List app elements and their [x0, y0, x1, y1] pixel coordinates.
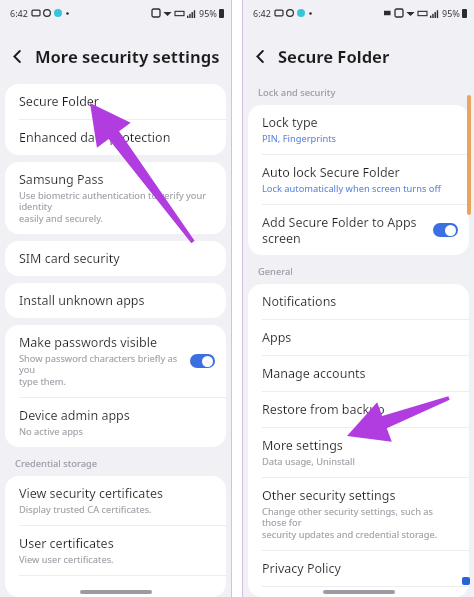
- button[interactable]: SIM card security: [5, 241, 226, 276]
- button[interactable]: User certificates: [5, 526, 226, 575]
- staticText: Credential storage: [15, 457, 98, 470]
- button[interactable]: Notifications: [248, 284, 469, 319]
- button[interactable]: Device admin apps: [5, 398, 226, 447]
- button[interactable]: Toggle on: [433, 223, 458, 237]
- staticText: Notifications: [262, 293, 337, 310]
- button[interactable]: More settings: [248, 428, 469, 477]
- staticText: Other security settings: [262, 487, 396, 504]
- staticText: Samsung Pass: [19, 171, 104, 188]
- staticText: User certificates: [19, 535, 114, 552]
- staticText: Install unknown apps: [19, 292, 145, 309]
- staticText: 95%: [442, 7, 460, 19]
- button[interactable]: Lock type: [248, 105, 469, 154]
- staticText: Show password characters briefly as you …: [19, 352, 184, 388]
- button[interactable]: Samsung Pass: [5, 162, 226, 234]
- button[interactable]: Back: [0, 39, 34, 73]
- staticText: Lock and security: [258, 86, 336, 99]
- button[interactable]: Other security settings: [248, 478, 469, 550]
- staticText: Lock type: [262, 114, 318, 131]
- staticText: More settings: [262, 437, 343, 454]
- button[interactable]: Add Secure Folder to Apps screen: [248, 205, 469, 255]
- staticText: Privacy Policy: [262, 560, 341, 577]
- staticText: Make passwords visible: [19, 334, 157, 351]
- button[interactable]: Toggle on: [190, 354, 215, 368]
- staticText: PIN, Fingerprints: [262, 132, 337, 145]
- staticText: 6:42: [253, 7, 271, 19]
- staticText: SIM card security: [19, 250, 120, 267]
- staticText: Lock automatically when screen turns off: [262, 182, 441, 195]
- staticText: Secure Folder: [278, 45, 390, 67]
- staticText: 95%: [199, 7, 217, 19]
- staticText: No active apps: [19, 425, 84, 438]
- staticText: Auto lock Secure Folder: [262, 164, 400, 181]
- button[interactable]: Privacy Policy: [248, 551, 469, 586]
- staticText: General: [258, 265, 293, 278]
- button[interactable]: Manage accounts: [248, 356, 469, 391]
- button[interactable]: About Secure Folder: [248, 587, 469, 597]
- staticText: View security certificates: [19, 485, 163, 502]
- staticText: Device admin apps: [19, 407, 130, 424]
- staticText: Manage accounts: [262, 365, 366, 382]
- staticText: Display trusted CA certificates.: [19, 503, 152, 516]
- staticText: View user certificates.: [19, 553, 114, 566]
- staticText: Use biometric authentication to verify y…: [19, 189, 215, 225]
- button[interactable]: Auto lock Secure Folder: [248, 155, 469, 204]
- button[interactable]: Make passwords visible: [5, 325, 226, 397]
- staticText: More security settings: [35, 45, 220, 67]
- button[interactable]: Restore from backup: [248, 392, 469, 427]
- button[interactable]: View security certificates: [5, 476, 226, 525]
- staticText: 6:42: [10, 7, 28, 19]
- staticText: Secure Folder: [19, 93, 100, 110]
- staticText: Enhanced data protection: [19, 129, 171, 146]
- staticText: Apps: [262, 329, 292, 346]
- button[interactable]: Install from device storage: [5, 576, 226, 597]
- staticText: Change other security settings, such as …: [262, 505, 458, 541]
- button[interactable]: Back: [243, 39, 277, 73]
- button[interactable]: Secure Folder: [5, 84, 226, 119]
- button[interactable]: Install unknown apps: [5, 283, 226, 318]
- button[interactable]: Enhanced data protection: [5, 120, 226, 155]
- staticText: Data usage, Uninstall: [262, 455, 355, 468]
- button[interactable]: Apps: [248, 320, 469, 355]
- staticText: Add Secure Folder to Apps screen: [262, 214, 417, 246]
- staticText: Restore from backup: [262, 401, 385, 418]
